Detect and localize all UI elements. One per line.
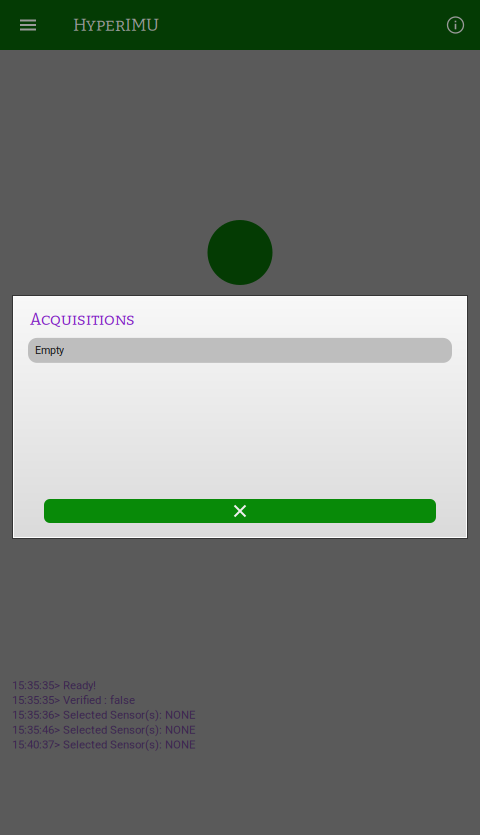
button[interactable]: Menu: [0, 0, 54, 50]
staticText: Acquisitions: [30, 310, 135, 329]
button[interactable]: [44, 499, 436, 523]
button[interactable]: Empty: [28, 338, 452, 363]
staticText: 15:40:37> Selected Sensor(s): NONE: [12, 738, 195, 751]
staticText: 15:35:46> Selected Sensor(s): NONE: [12, 723, 195, 736]
button[interactable]: Info: [430, 0, 480, 50]
staticText: HyperIMU: [73, 15, 159, 35]
staticText: 15:35:36> Selected Sensor(s): NONE: [12, 708, 195, 722]
staticText: 15:35:35> Ready!: [12, 679, 96, 692]
staticText: 15:35:35> Verified : false: [12, 694, 135, 707]
staticText: Empty: [35, 344, 64, 357]
